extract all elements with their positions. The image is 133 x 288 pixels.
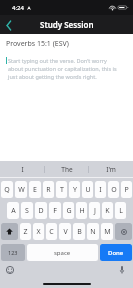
- staticText: E: [33, 185, 37, 195]
- button[interactable]: I'm: [89, 161, 133, 177]
- staticText: 123: [8, 249, 18, 256]
- button[interactable]: J: [89, 202, 100, 219]
- staticText: 4:24: [12, 4, 24, 12]
- button[interactable]: space: [27, 244, 98, 261]
- staticText: T: [60, 185, 64, 195]
- staticText: O: [111, 185, 117, 195]
- button[interactable]: Emoji: [4, 264, 16, 276]
- staticText: R: [46, 185, 51, 195]
- staticText: I: [99, 185, 102, 195]
- staticText: space: [54, 249, 71, 257]
- button[interactable]: I: [0, 161, 45, 177]
- staticText: D: [38, 206, 44, 216]
- staticText: Y: [73, 185, 77, 195]
- button[interactable]: K: [102, 202, 113, 219]
- button[interactable]: P: [121, 181, 132, 198]
- staticText: U: [85, 185, 91, 195]
- staticText: F: [53, 206, 57, 216]
- button[interactable]: L: [115, 202, 126, 219]
- button[interactable]: Back: [0, 16, 18, 34]
- staticText: The: [61, 165, 73, 174]
- button[interactable]: S: [21, 202, 33, 219]
- button[interactable]: Done: [100, 244, 132, 261]
- button[interactable]: Shift: [1, 223, 18, 240]
- button[interactable]: Q: [1, 181, 13, 198]
- staticText: P: [124, 185, 129, 195]
- staticText: I'm: [106, 165, 116, 174]
- button[interactable]: N: [87, 223, 99, 240]
- staticText: G: [66, 206, 72, 216]
- button[interactable]: Y: [69, 181, 80, 198]
- staticText: H: [79, 206, 85, 216]
- staticText: J: [94, 206, 96, 216]
- button[interactable]: F: [49, 202, 61, 219]
- button[interactable]: E: [29, 181, 41, 198]
- button[interactable]: A: [7, 202, 19, 219]
- staticText: K: [105, 206, 110, 216]
- button[interactable]: V: [59, 223, 71, 240]
- button[interactable]: X: [33, 223, 44, 240]
- staticText: W: [18, 185, 25, 195]
- button[interactable]: Backspace: [115, 223, 132, 240]
- staticText: I: [21, 165, 24, 174]
- staticText: N: [90, 227, 96, 237]
- button[interactable]: The: [45, 161, 89, 177]
- staticText: B: [77, 227, 82, 237]
- button[interactable]: Dictation: [116, 264, 128, 276]
- staticText: V: [63, 227, 68, 237]
- button[interactable]: Z: [20, 223, 31, 240]
- button[interactable]: W: [15, 181, 27, 198]
- staticText: X: [36, 227, 41, 237]
- staticText: Proverbs 15:1 (ESV): [6, 39, 69, 49]
- staticText: C: [49, 227, 54, 237]
- staticText: M: [104, 227, 111, 237]
- staticText: Done: [108, 249, 124, 257]
- button[interactable]: G: [63, 202, 74, 219]
- staticText: Start typing out the verse. Don't worry …: [8, 57, 123, 81]
- button[interactable]: H: [76, 202, 87, 219]
- button[interactable]: 123: [1, 244, 25, 261]
- staticText: Q: [4, 185, 10, 195]
- button[interactable]: U: [82, 181, 93, 198]
- button[interactable]: T: [56, 181, 67, 198]
- button[interactable]: M: [101, 223, 113, 240]
- staticText: S: [25, 206, 29, 216]
- button[interactable]: O: [108, 181, 119, 198]
- button[interactable]: R: [43, 181, 54, 198]
- button[interactable]: B: [73, 223, 85, 240]
- button[interactable]: I: [95, 181, 106, 198]
- button[interactable]: C: [46, 223, 57, 240]
- staticText: Study Session: [40, 19, 94, 30]
- button[interactable]: D: [35, 202, 47, 219]
- staticText: Z: [23, 227, 28, 237]
- staticText: A: [11, 206, 16, 216]
- staticText: L: [119, 206, 123, 216]
